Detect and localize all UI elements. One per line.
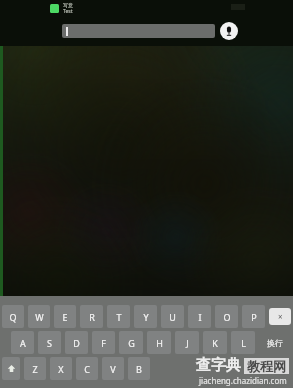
- button[interactable]: Backspace: [269, 308, 291, 325]
- button[interactable]: R: [80, 305, 103, 328]
- staticText: B: [136, 363, 142, 375]
- button[interactable]: K: [203, 331, 227, 354]
- staticText: V: [110, 363, 116, 375]
- staticText: Test: [63, 8, 73, 15]
- button[interactable]: F: [92, 331, 115, 354]
- staticText: D: [73, 337, 80, 349]
- button[interactable]: O: [215, 305, 238, 328]
- button[interactable]: H: [147, 331, 171, 354]
- button[interactable]: T: [107, 305, 130, 328]
- staticText: Q: [9, 311, 17, 323]
- button[interactable]: G: [119, 331, 143, 354]
- staticText: 换行: [267, 338, 283, 348]
- button[interactable]: Voice input: [220, 22, 238, 40]
- staticText: C: [84, 363, 90, 375]
- button[interactable]: Q: [2, 305, 24, 328]
- staticText: ×: [278, 311, 283, 322]
- button[interactable]: 写意: [50, 2, 73, 15]
- button[interactable]: D: [65, 331, 88, 354]
- button[interactable]: 换行: [259, 331, 291, 354]
- button[interactable]: V: [102, 357, 124, 380]
- staticText: 教程网: [247, 358, 286, 374]
- staticText: jiacheng.chazidian.com: [199, 375, 287, 386]
- button[interactable]: Y: [134, 305, 157, 328]
- button[interactable]: C: [76, 357, 98, 380]
- button[interactable]: [62, 24, 215, 38]
- staticText: W: [35, 311, 44, 323]
- staticText: O: [223, 311, 231, 323]
- staticText: I: [198, 311, 202, 323]
- staticText: H: [156, 337, 163, 349]
- staticText: S: [47, 337, 52, 349]
- button[interactable]: Z: [24, 357, 46, 380]
- staticText: X: [58, 363, 64, 375]
- button[interactable]: Shift: [2, 357, 20, 380]
- staticText: U: [169, 311, 176, 323]
- staticText: 查字典: [196, 356, 241, 375]
- staticText: A: [20, 337, 26, 349]
- staticText: F: [101, 337, 106, 349]
- staticText: J: [186, 337, 189, 349]
- staticText: P: [251, 311, 257, 323]
- button[interactable]: X: [50, 357, 72, 380]
- button[interactable]: W: [28, 305, 50, 328]
- staticText: T: [116, 311, 122, 323]
- button[interactable]: B: [128, 357, 150, 380]
- staticText: R: [89, 311, 95, 323]
- staticText: L: [241, 337, 246, 349]
- staticText: E: [62, 311, 68, 323]
- button[interactable]: E: [54, 305, 76, 328]
- button[interactable]: A: [11, 331, 34, 354]
- staticText: Z: [32, 363, 38, 375]
- button[interactable]: J: [175, 331, 199, 354]
- button[interactable]: P: [242, 305, 265, 328]
- button[interactable]: S: [38, 331, 61, 354]
- button[interactable]: I: [188, 305, 211, 328]
- button[interactable]: L: [231, 331, 255, 354]
- staticText: G: [128, 337, 135, 349]
- staticText: K: [212, 337, 218, 349]
- staticText: 写意: [63, 2, 73, 8]
- button[interactable]: U: [161, 305, 184, 328]
- staticText: Y: [143, 311, 149, 323]
